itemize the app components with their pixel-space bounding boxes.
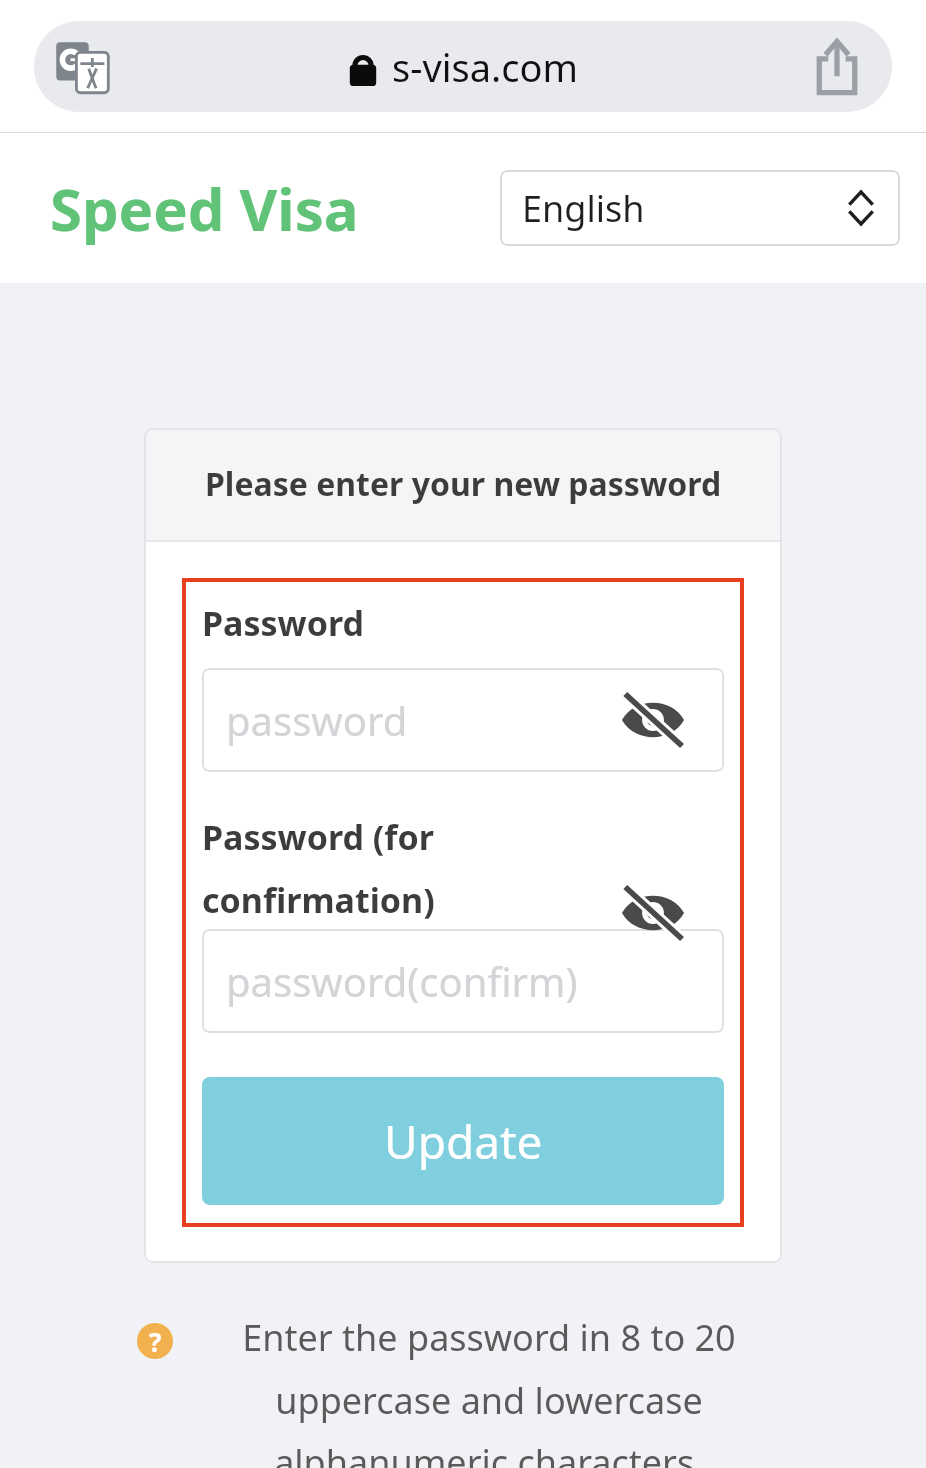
staticText: English <box>522 184 645 233</box>
staticText: ? <box>149 1324 162 1359</box>
button[interactable]: Translate page <box>51 36 113 98</box>
staticText: password <box>226 693 408 747</box>
staticText: Update <box>384 1110 543 1173</box>
button[interactable]: Show password <box>616 683 690 757</box>
staticText: Please enter your new password <box>205 462 722 506</box>
staticText: Enter the password in 8 to 20 uppercase … <box>189 1313 789 1468</box>
button[interactable]: Speed Visa <box>50 169 359 248</box>
button[interactable]: password <box>202 668 724 772</box>
button[interactable]: Share <box>808 38 866 96</box>
staticText: Password (for confirmation) <box>202 814 435 923</box>
button[interactable]: Update <box>202 1077 724 1205</box>
button[interactable]: English <box>500 170 900 246</box>
button[interactable]: password(confirm) <box>202 929 724 1033</box>
button[interactable]: Show password <box>616 876 690 950</box>
button[interactable]: Translate page <box>34 21 892 112</box>
staticText: Password <box>202 600 364 646</box>
staticText: s-visa.com <box>392 41 579 93</box>
staticText: password(confirm) <box>226 954 578 1008</box>
